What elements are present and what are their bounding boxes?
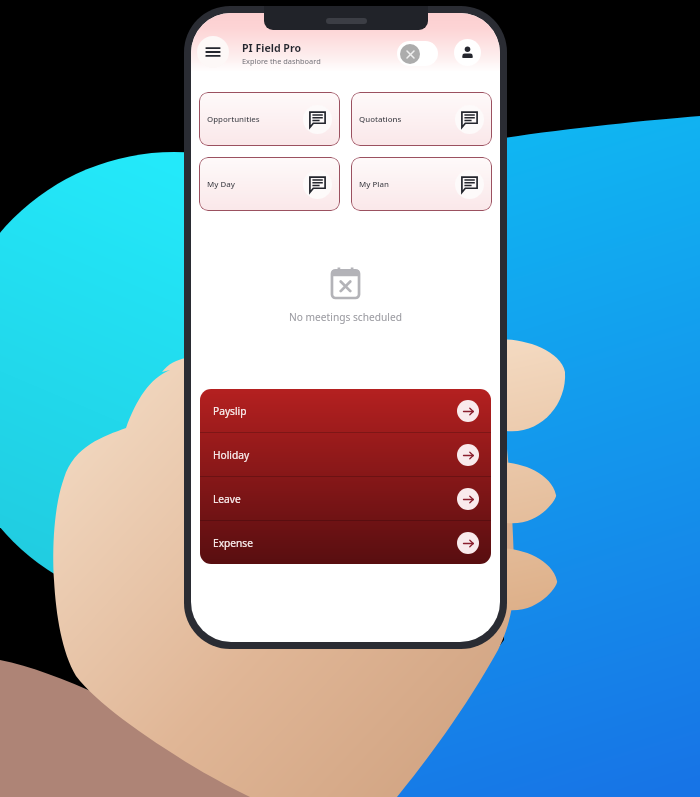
staticText: PI Field Pro (242, 41, 302, 55)
button[interactable]: Leave (200, 477, 491, 520)
button[interactable]: My Plan (351, 157, 492, 211)
staticText: Leave (213, 492, 241, 506)
staticText: Opportunities (207, 114, 260, 125)
staticText: Explore the dashboard (242, 56, 321, 66)
button[interactable]: Toggle offline mode (397, 41, 438, 66)
button[interactable]: Profile (454, 39, 481, 66)
button[interactable]: Menu (197, 36, 229, 68)
staticText: My Plan (359, 179, 389, 190)
staticText: Quotations (359, 114, 402, 125)
button[interactable]: Payslip (200, 389, 491, 432)
staticText: Expense (213, 536, 253, 550)
staticText: No meetings scheduled (289, 310, 402, 324)
staticText: My Day (207, 179, 235, 190)
button[interactable]: Opportunities (199, 92, 340, 146)
button[interactable]: Quotations (351, 92, 492, 146)
button[interactable]: Holiday (200, 433, 491, 476)
staticText: Holiday (213, 448, 250, 462)
button[interactable]: My Day (199, 157, 340, 211)
staticText: Payslip (213, 404, 247, 418)
button[interactable]: Expense (200, 521, 491, 564)
